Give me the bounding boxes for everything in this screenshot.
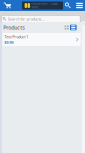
button[interactable]: Grid layout [63,24,70,31]
staticText: $9.99 [4,40,13,45]
staticText: Search for products... [8,16,45,22]
button[interactable]: Shopping cart [0,0,15,11]
staticText: ONLINE SHOP · DEMO STORE [31,2,58,9]
button[interactable]: Search for products... [2,15,80,22]
button[interactable]: Menu [74,0,85,11]
button[interactable]: List layout [70,25,77,30]
button[interactable]: Test Product 1 [3,33,81,46]
button[interactable]: Search [62,0,74,11]
staticText: Products [3,24,25,31]
staticText: Test Product 1 [4,34,28,39]
